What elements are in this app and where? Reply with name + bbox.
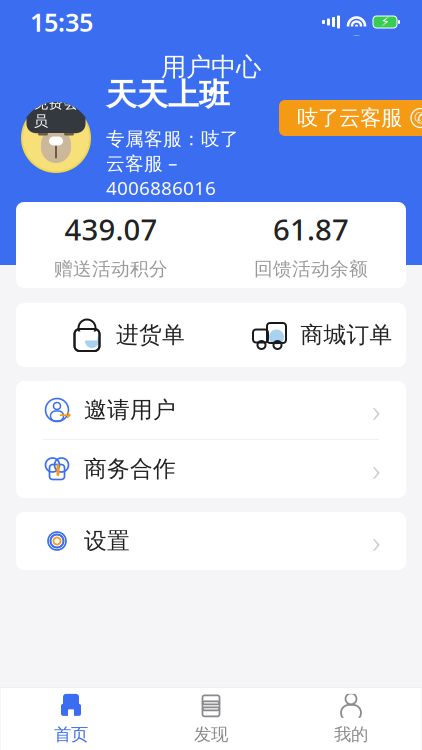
button[interactable]: 发现 (141, 688, 281, 750)
staticText: 15:35 (30, 5, 93, 39)
button[interactable]: → (16, 381, 406, 439)
button[interactable]: 我的 (281, 688, 421, 750)
button[interactable]: 进货单 (16, 303, 211, 367)
staticText: 进货单 (116, 321, 185, 349)
staticText: 回馈活动余额 (254, 257, 368, 280)
staticText: 首页 (54, 724, 88, 745)
staticText: › (372, 520, 380, 562)
staticText: 61.87 (273, 210, 349, 249)
staticText: 我的 (334, 724, 368, 745)
staticText: ⚡︎ (380, 14, 389, 29)
staticText: 免费会员 (33, 94, 78, 130)
staticText: 发现 (194, 724, 228, 745)
staticText: 用户中心 (161, 51, 261, 82)
button[interactable]: 商城订单 (211, 303, 406, 367)
staticText: → (59, 407, 71, 423)
staticText: 邀请用户 (84, 396, 176, 424)
staticText: 专属客服：吱了云客服 – 4006886016 (106, 128, 239, 200)
staticText: 吱了云客服 (297, 105, 402, 131)
staticText: 设置 (84, 527, 130, 555)
staticText: 天天上班 (106, 76, 230, 114)
button[interactable]: 设置 (16, 512, 406, 570)
button[interactable]: 吱了云客服 (257, 120, 422, 156)
staticText: 439.07 (64, 210, 157, 249)
staticText: 商务合作 (84, 455, 176, 483)
staticText: › (372, 389, 380, 431)
button[interactable]: 首页 (1, 688, 141, 750)
staticText: ✆ (414, 109, 422, 127)
button[interactable]: 商务合作 (16, 440, 406, 498)
staticText: 赠送活动积分 (54, 257, 168, 280)
staticText: 商城订单 (300, 321, 392, 349)
staticText: › (372, 448, 380, 490)
